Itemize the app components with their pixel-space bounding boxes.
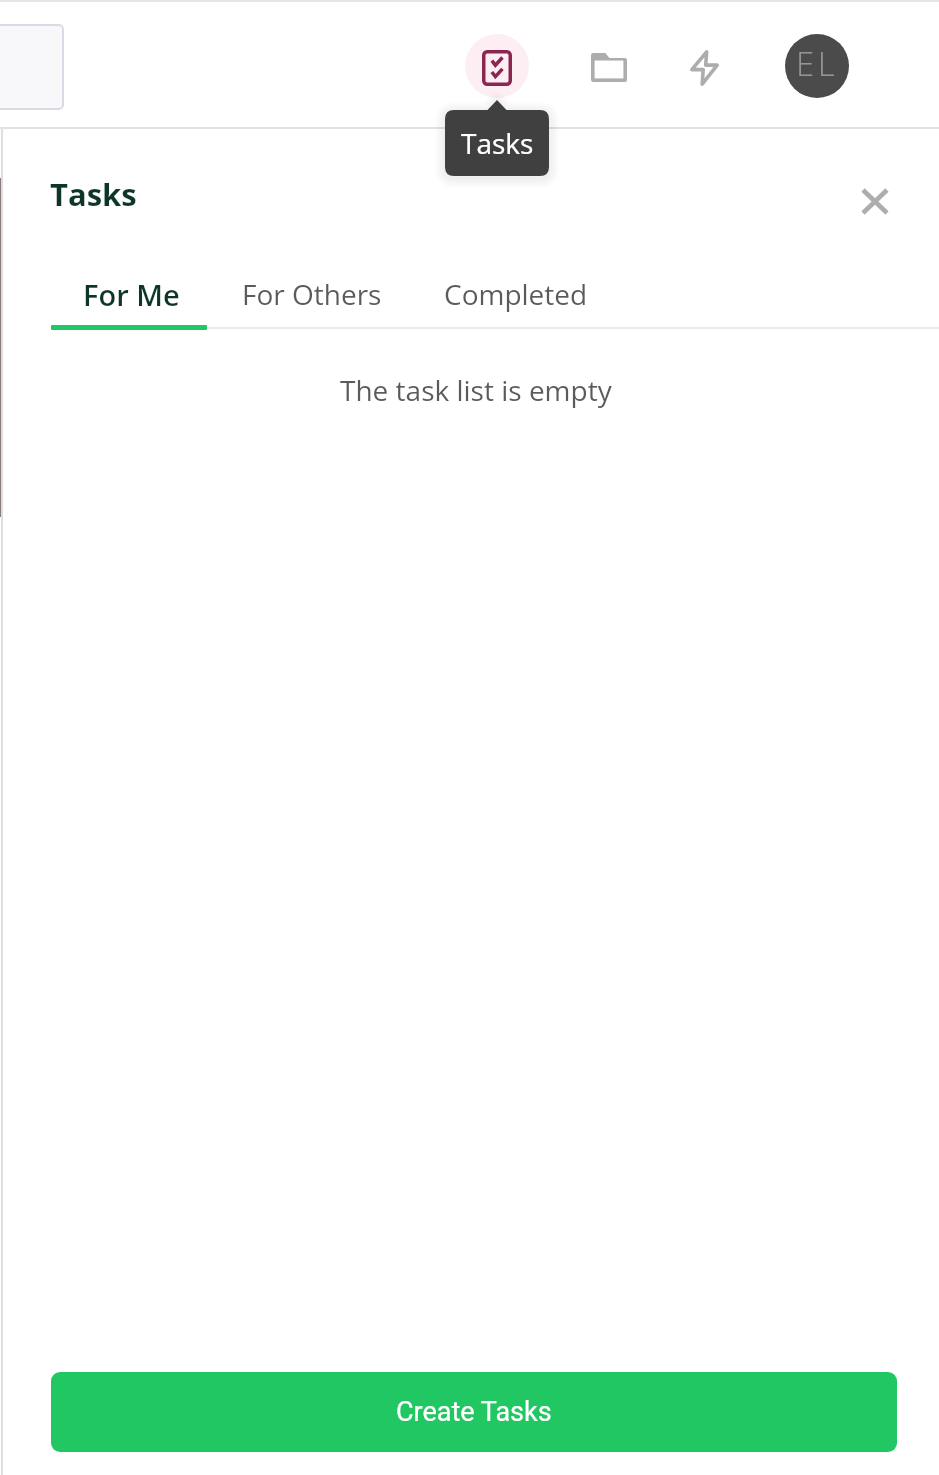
staticText: The task list is empty bbox=[340, 371, 612, 409]
staticText: Completed bbox=[444, 275, 588, 313]
button[interactable]: Tasks bbox=[465, 34, 529, 98]
button[interactable]: For Me bbox=[52, 275, 211, 327]
button[interactable]: For Others bbox=[211, 275, 413, 327]
staticText: For Others bbox=[242, 275, 382, 313]
button[interactable]: Activity bbox=[675, 38, 734, 97]
button[interactable]: Files bbox=[579, 38, 638, 97]
button[interactable]: Completed bbox=[413, 275, 619, 327]
staticText: EL bbox=[796, 41, 839, 86]
staticText: Tasks bbox=[461, 124, 534, 162]
staticText: Tasks bbox=[50, 173, 137, 215]
button[interactable]: Create Tasks bbox=[51, 1372, 897, 1452]
button[interactable]: Close bbox=[851, 177, 899, 225]
button[interactable]: Account bbox=[785, 34, 849, 98]
staticText: Create Tasks bbox=[396, 1396, 552, 1428]
staticText: For Me bbox=[83, 275, 180, 314]
